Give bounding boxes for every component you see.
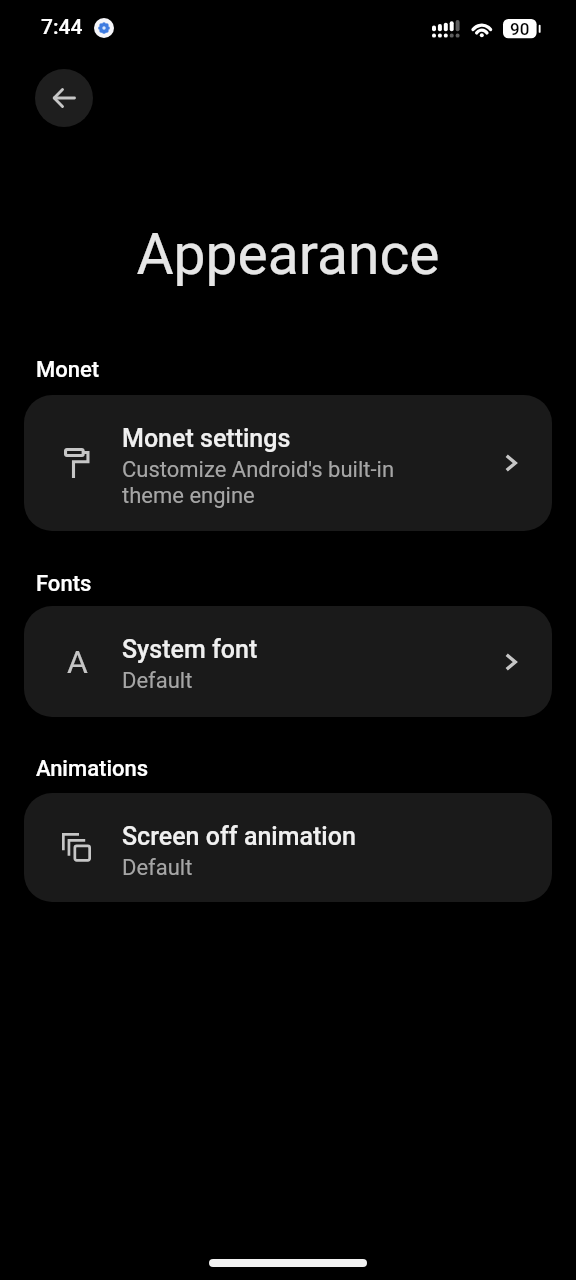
button[interactable]: A (24, 606, 552, 717)
other: Open (505, 653, 517, 671)
staticText: 7:44 (41, 15, 83, 40)
staticText: Fonts (36, 571, 92, 597)
button[interactable]: Back (35, 69, 93, 127)
staticText: Appearance (0, 221, 576, 288)
staticText: Default (122, 668, 193, 694)
button[interactable]: Monet settings (24, 395, 552, 531)
staticText: Monet settings (122, 424, 291, 453)
staticText: Customize Android's built-in theme engin… (122, 457, 395, 509)
other: Open (505, 454, 517, 472)
staticText: Monet (36, 357, 100, 383)
staticText: Screen off animation (122, 822, 356, 851)
staticText: Default (122, 855, 193, 881)
staticText: 90 (510, 19, 530, 38)
staticText: Animations (36, 756, 149, 782)
staticText: A (67, 643, 88, 681)
staticText: System font (122, 635, 258, 664)
button[interactable]: Screen off animation (24, 793, 552, 902)
